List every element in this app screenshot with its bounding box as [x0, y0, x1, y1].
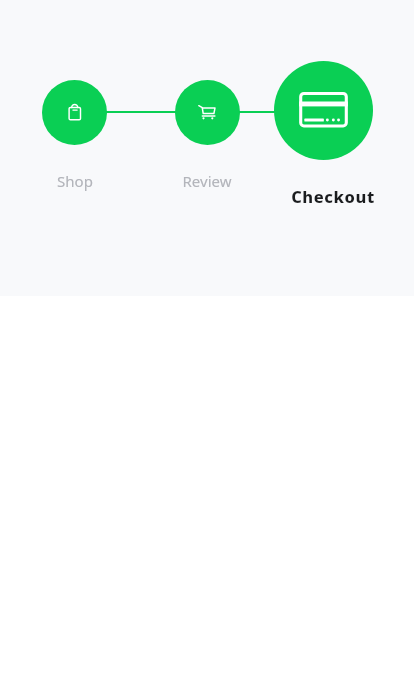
staticText: Checkout: [263, 185, 403, 207]
button[interactable]: Review: [137, 171, 277, 193]
button[interactable]: Checkout step: [274, 61, 373, 160]
button[interactable]: Shop step: [42, 80, 107, 145]
button[interactable]: Review step: [175, 80, 240, 145]
staticText: Review: [137, 171, 277, 191]
staticText: Shop: [5, 171, 145, 191]
button[interactable]: Checkout: [263, 185, 403, 207]
button[interactable]: Shop: [5, 171, 145, 193]
